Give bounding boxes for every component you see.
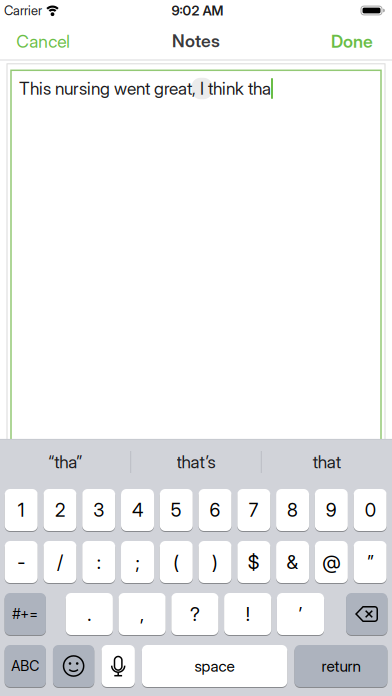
staticText: #+= (12, 606, 38, 622)
staticText: 8 (287, 499, 298, 521)
staticText: ABC (11, 658, 39, 674)
button[interactable]: . (66, 592, 113, 636)
staticText: 3 (93, 499, 104, 521)
staticText: This nursing went great, I think tha (19, 78, 271, 99)
staticText: 0 (365, 499, 376, 521)
staticText: 9 (326, 499, 337, 521)
staticText: ( (173, 551, 179, 573)
staticText: Cancel (16, 31, 70, 52)
staticText: Notes (172, 31, 220, 51)
staticText: 6 (210, 499, 221, 521)
staticText: Done (331, 31, 373, 52)
staticText: 2 (55, 499, 65, 521)
button[interactable]: Emoji (53, 644, 94, 688)
button[interactable]: ABC (5, 644, 46, 688)
button[interactable]: ’ (277, 592, 324, 636)
button[interactable]: $ (237, 540, 270, 584)
staticText: / (57, 551, 63, 573)
button[interactable]: space (142, 644, 287, 688)
button[interactable]: 7 (237, 488, 270, 532)
staticText: , (140, 603, 144, 625)
staticText: that’s (176, 452, 215, 472)
staticText: ! (246, 603, 250, 625)
button[interactable]: ” (354, 540, 387, 584)
staticText: return (321, 657, 360, 675)
button[interactable]: & (276, 540, 309, 584)
staticText: ” (367, 551, 373, 573)
staticText: ; (135, 551, 139, 573)
staticText: @ (322, 551, 340, 573)
button[interactable]: ( (160, 540, 193, 584)
button[interactable]: @ (315, 540, 348, 584)
button[interactable]: “tha” (5, 442, 125, 482)
staticText: : (97, 551, 101, 573)
button[interactable]: #+= (5, 592, 46, 636)
button[interactable]: return (294, 644, 387, 688)
staticText: Carrier (4, 3, 42, 18)
staticText: ? (190, 603, 200, 625)
button[interactable]: 4 (121, 488, 154, 532)
staticText: 4 (132, 499, 143, 521)
button[interactable]: ) (199, 540, 232, 584)
button[interactable]: 5 (160, 488, 193, 532)
button[interactable]: 1 (5, 488, 38, 532)
staticText: ’ (298, 603, 302, 625)
button[interactable]: 0 (354, 488, 387, 532)
button[interactable]: : (82, 540, 115, 584)
staticText: ) (212, 551, 218, 573)
button[interactable]: ; (121, 540, 154, 584)
button[interactable]: 9 (315, 488, 348, 532)
staticText: that (313, 452, 341, 472)
button[interactable]: / (43, 540, 76, 584)
staticText: 1 (18, 499, 25, 521)
button[interactable]: ! (224, 592, 271, 636)
staticText: - (17, 551, 25, 573)
button[interactable]: - (5, 540, 38, 584)
button[interactable]: Dictate (101, 644, 135, 688)
staticText: “tha” (48, 452, 82, 472)
staticText: space (195, 657, 235, 675)
staticText: $ (248, 551, 260, 573)
staticText: . (87, 603, 91, 625)
button[interactable]: that’s (136, 442, 256, 482)
button[interactable]: Delete (346, 592, 387, 636)
staticText: 7 (249, 499, 259, 521)
button[interactable]: 6 (199, 488, 232, 532)
staticText: 9:02 AM (171, 2, 223, 18)
button[interactable]: Cancel (0, 21, 91, 61)
button[interactable]: 2 (43, 488, 76, 532)
staticText: & (287, 551, 299, 573)
button[interactable]: , (118, 592, 166, 636)
button[interactable]: 8 (276, 488, 309, 532)
button[interactable]: ? (171, 592, 218, 636)
button[interactable]: Done (312, 21, 392, 61)
button[interactable]: 3 (82, 488, 115, 532)
button[interactable]: that (267, 442, 387, 482)
staticText: 5 (171, 499, 182, 521)
